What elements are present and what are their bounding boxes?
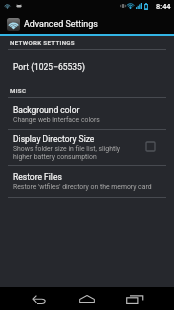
staticText: NETWORK SETTINGS	[10, 39, 75, 46]
button[interactable]: Advanced Settings	[0, 14, 174, 34]
button[interactable]: Back	[14, 287, 62, 310]
button[interactable]: Recent apps	[111, 287, 159, 310]
staticText: Shows folder size in file list, slightly…	[13, 145, 121, 160]
button[interactable]: Restore Files	[0, 166, 174, 198]
staticText: Display Directory Size	[13, 134, 95, 144]
staticText: Restore 'wtfiles' directory on the memor…	[13, 183, 152, 191]
button[interactable]: Display Directory Size checkbox	[146, 142, 155, 151]
staticText: Port (1025−65535)	[13, 62, 85, 72]
staticText: MISC	[10, 87, 27, 94]
staticText: Restore Files	[13, 172, 62, 182]
button[interactable]: Display Directory Size	[0, 130, 174, 162]
staticText: Change web interface colors	[13, 116, 100, 124]
staticText: Advanced Settings	[24, 19, 98, 29]
button[interactable]: Port (1025−65535)	[0, 50, 174, 82]
staticText: 8:44	[156, 2, 171, 11]
staticText: Background color	[13, 105, 80, 115]
button[interactable]: Home	[63, 287, 111, 310]
button[interactable]: Background color	[0, 98, 174, 130]
